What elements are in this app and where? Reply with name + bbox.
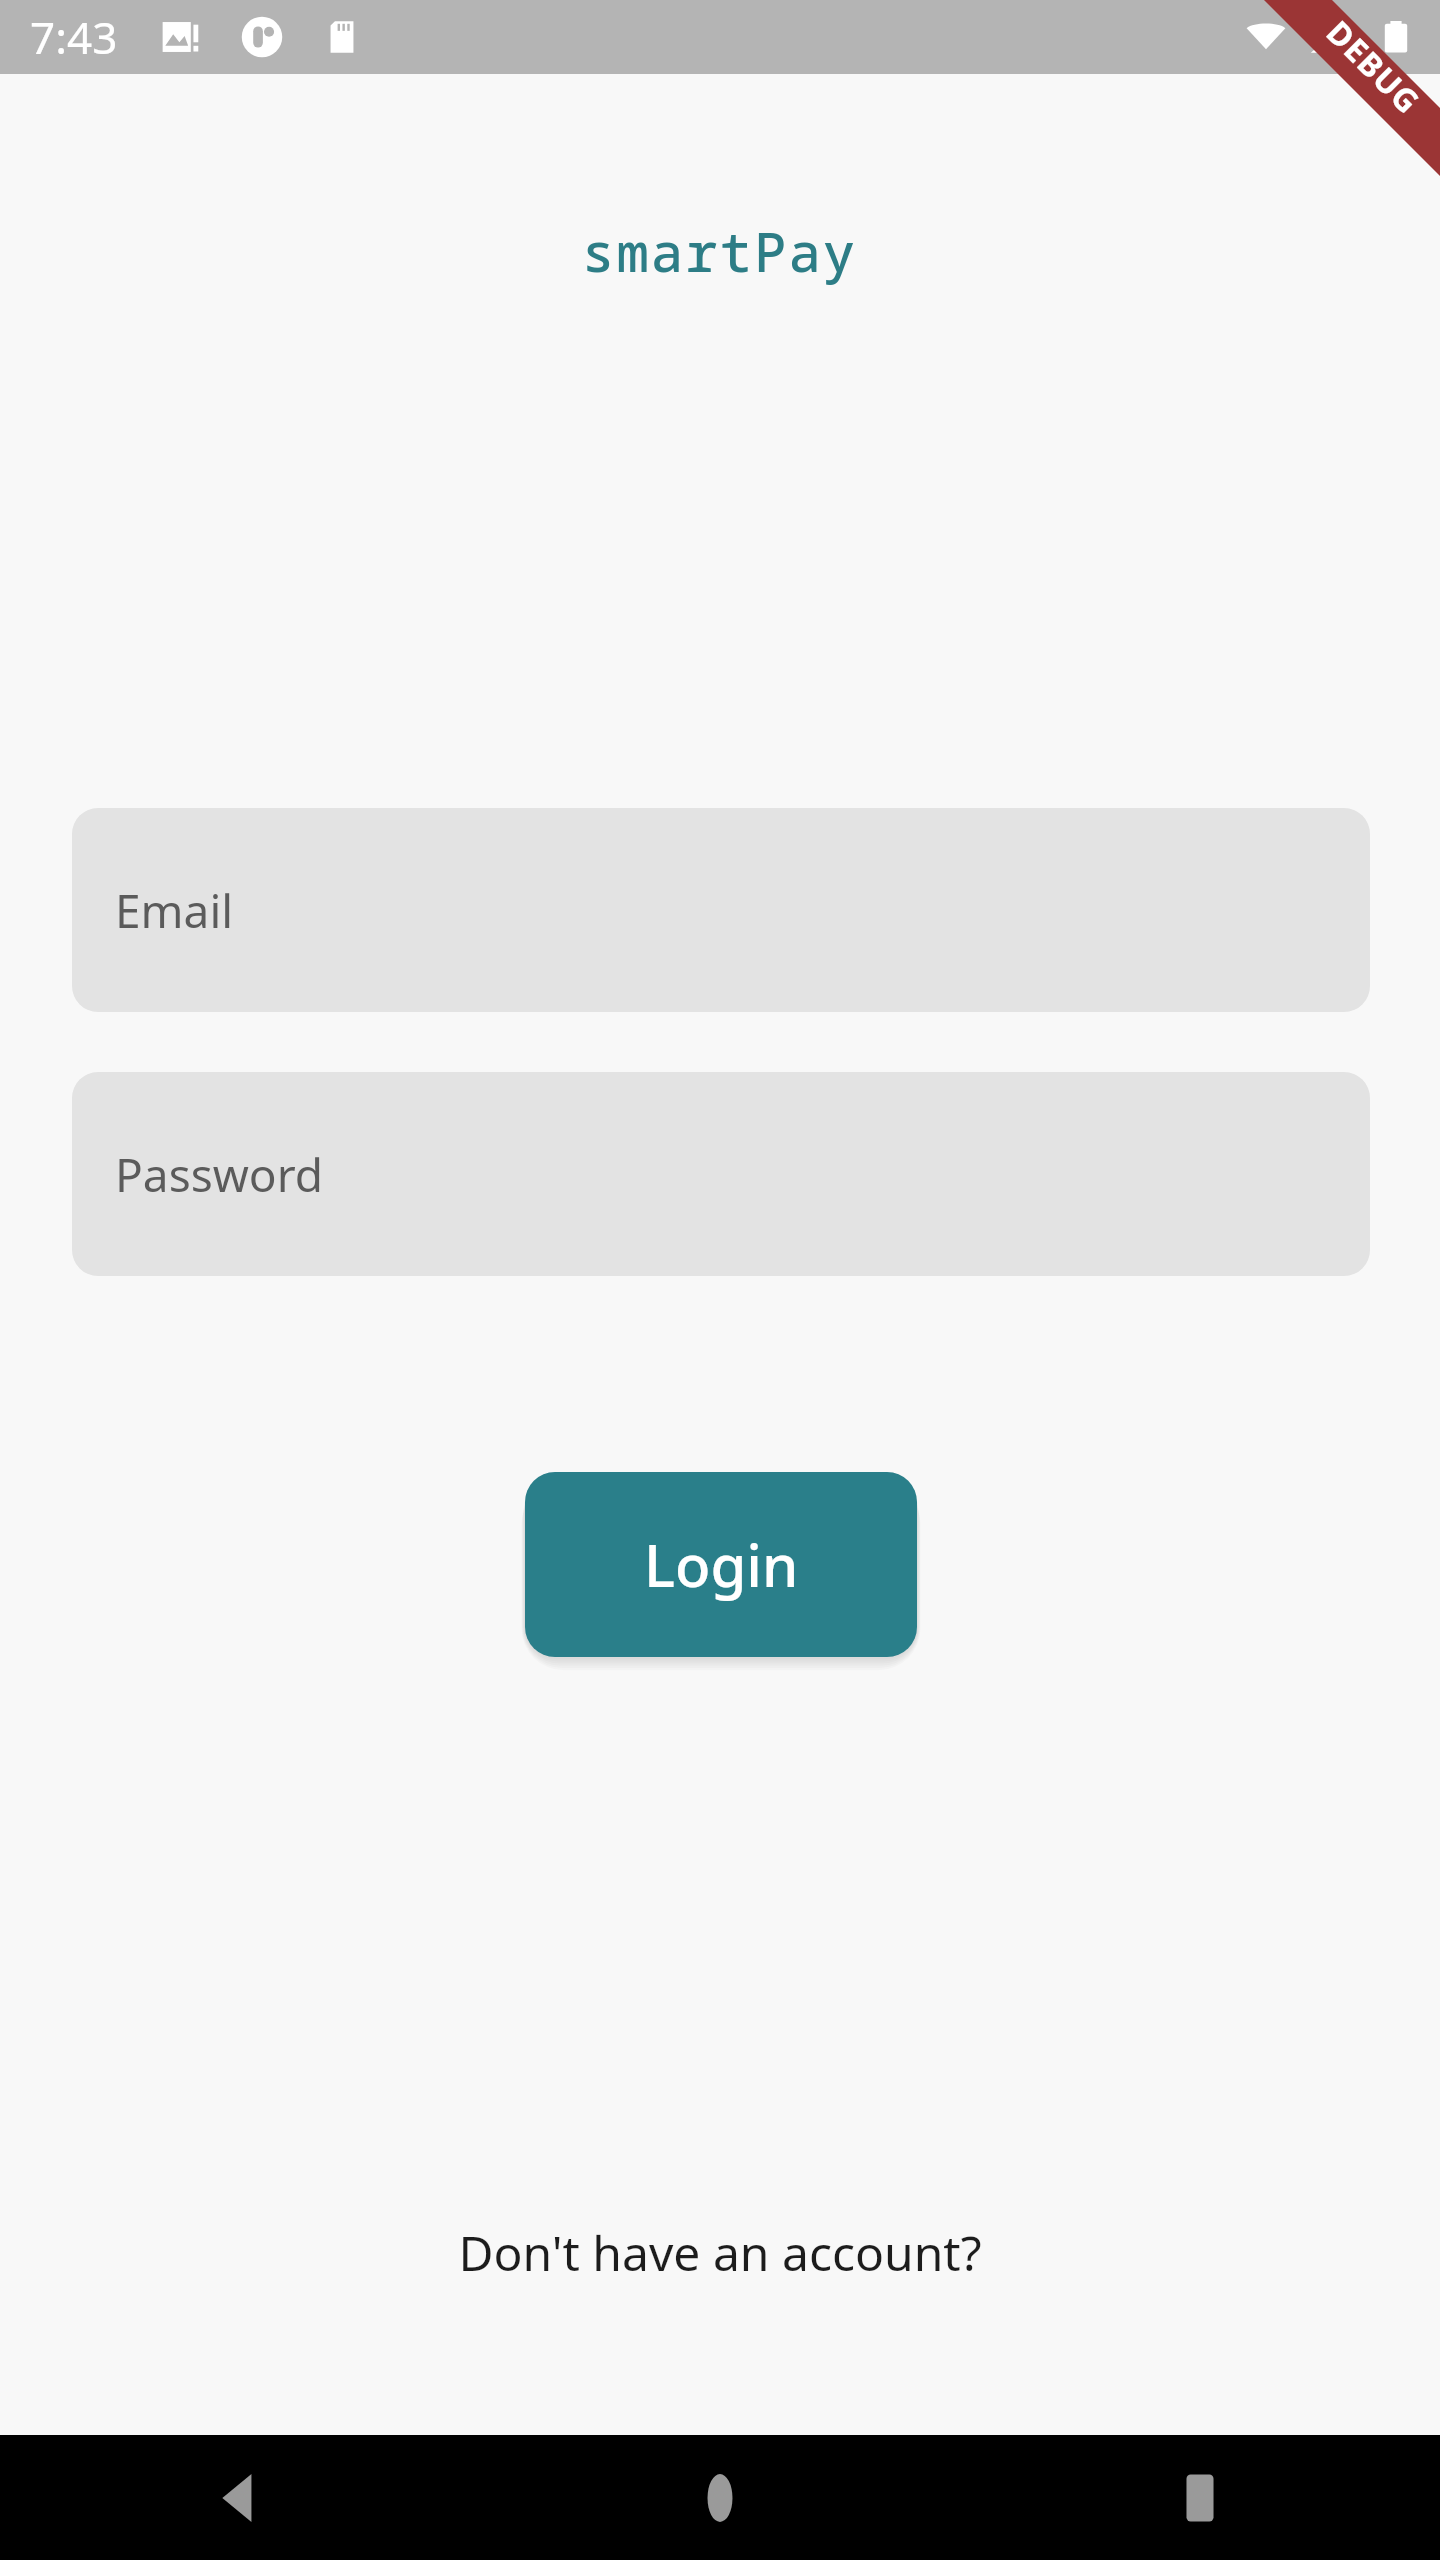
button[interactable]: Home xyxy=(480,2435,960,2560)
button[interactable]: Email xyxy=(72,808,1370,1012)
button[interactable]: Back xyxy=(0,2435,480,2560)
button[interactable]: Password xyxy=(72,1072,1370,1276)
button[interactable]: Recent apps xyxy=(960,2435,1440,2560)
staticText: DEBUG xyxy=(1317,11,1430,123)
button[interactable]: Don't have an account? xyxy=(442,2210,998,2295)
staticText: 7:43 xyxy=(30,7,118,67)
staticText: Login xyxy=(644,1525,799,1604)
button[interactable]: Login xyxy=(525,1472,917,1657)
staticText: Email xyxy=(115,879,234,942)
staticText: Password xyxy=(115,1143,324,1206)
staticText: smartPay xyxy=(582,214,858,288)
staticText: Don't have an account? xyxy=(458,2220,982,2285)
